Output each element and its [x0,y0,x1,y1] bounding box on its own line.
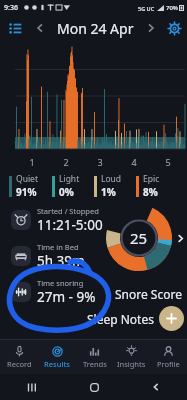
staticText: 4 [131,156,137,168]
staticText: Insights [117,359,146,369]
button[interactable]: Insights [113,340,150,374]
button[interactable]: Menu [0,15,30,41]
button[interactable]: Sleep score 25 [104,203,174,273]
button[interactable]: Mon 24 Apr [50,15,141,41]
button[interactable]: Snore Score [115,286,182,302]
staticText: 70% [166,4,178,12]
staticText: Results [44,359,70,369]
button[interactable]: Next day [141,15,161,41]
staticText: 0% [59,185,74,199]
staticText: Sleep Notes [87,311,154,327]
staticText: 11:21-5:00 [37,216,103,234]
staticText: Time in Bed [37,242,79,252]
button[interactable]: Settings [161,15,187,41]
staticText: Loud [101,173,122,185]
staticText: 1 [29,156,35,168]
staticText: Quiet [16,173,38,185]
button[interactable]: Light [52,173,94,199]
button[interactable]: Home [63,374,125,400]
staticText: Light [59,173,80,185]
button[interactable]: Loud [94,173,136,199]
staticText: 25 [130,228,148,248]
staticText: Trends [83,359,107,369]
staticText: 2 [63,156,69,168]
button[interactable]: Time in Bed [11,238,187,274]
staticText: 1% [101,185,116,199]
staticText: Record [7,359,32,369]
staticText: 8% [143,185,158,199]
button[interactable]: Epic [136,173,178,199]
button[interactable]: Record [0,340,38,374]
button[interactable]: Add sleep note [159,306,184,331]
button[interactable]: More details [174,203,187,273]
staticText: 5G UC [138,5,155,12]
button[interactable]: Previous day [30,15,50,41]
button[interactable]: Time snoring [11,274,187,310]
button[interactable]: Results [38,340,76,374]
staticText: 5 [165,156,171,168]
staticText: 91% [16,185,37,199]
button[interactable]: Quiet [9,173,52,199]
staticText: 27m - 9% [37,288,96,306]
staticText: 5h 39m [37,252,85,270]
button[interactable]: Trends [76,340,113,374]
button[interactable]: Back [125,374,187,400]
button[interactable]: Profile [150,340,187,374]
button[interactable]: Recents [0,374,63,400]
staticText: Epic [143,173,160,185]
staticText: Mon 24 Apr [57,19,134,38]
button[interactable]: Started / Stopped [11,202,187,238]
staticText: 3 [97,156,103,168]
staticText: Profile [157,359,180,369]
staticText: Time snoring [37,278,84,288]
staticText: Started / Stopped [37,206,99,216]
staticText: 9:36 [4,3,18,13]
